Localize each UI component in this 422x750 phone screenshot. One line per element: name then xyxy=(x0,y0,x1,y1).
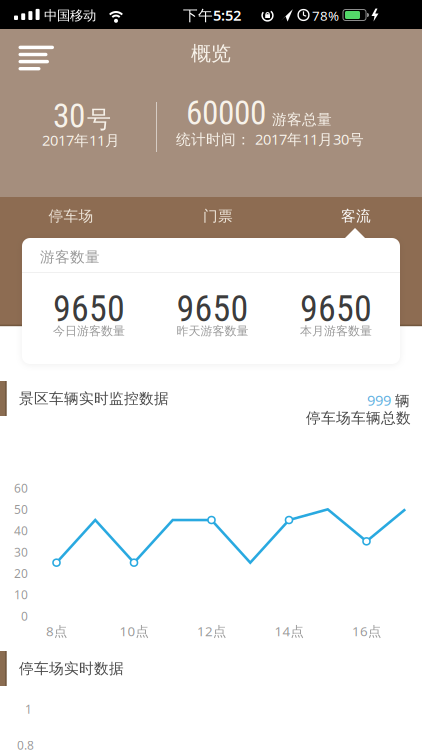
staticText: 统计时间： 2017年11月30号 xyxy=(176,129,364,149)
staticText: 本月游客数量 xyxy=(300,324,372,338)
staticText: 9650 xyxy=(53,288,125,330)
staticText: 78% xyxy=(312,7,339,24)
staticText: 9650 xyxy=(300,288,372,330)
staticText: 游客数量 xyxy=(40,248,100,266)
staticText: 999 xyxy=(367,390,391,410)
staticText: 0.8 xyxy=(17,737,34,750)
staticText: 10 xyxy=(14,587,28,603)
staticText: 1 xyxy=(25,701,32,717)
staticText: 8点 xyxy=(46,622,67,640)
staticText: 9650 xyxy=(176,288,248,330)
staticText: 10点 xyxy=(119,622,148,640)
staticText: 辆 xyxy=(395,392,410,410)
staticText: 30 xyxy=(14,544,28,560)
staticText: 中国移动 xyxy=(44,7,96,24)
staticText: 16点 xyxy=(352,622,381,640)
staticText: 60000 xyxy=(186,93,266,133)
staticText: 今日游客数量 xyxy=(53,324,125,338)
staticText: 客流 xyxy=(341,207,371,225)
staticText: 昨天游客数量 xyxy=(176,324,248,338)
staticText: 20 xyxy=(14,565,28,581)
staticText: 40 xyxy=(14,523,28,539)
staticText: 下午5:52 xyxy=(183,5,241,25)
staticText: 2017年11月 xyxy=(42,130,120,150)
staticText: 号 xyxy=(87,105,111,134)
staticText: 游客总量 xyxy=(272,110,332,128)
staticText: 停车场 xyxy=(48,207,93,225)
staticText: 景区车辆实时监控数据 xyxy=(19,389,169,407)
staticText: 概览 xyxy=(191,41,231,66)
staticText: 12点 xyxy=(197,622,226,640)
staticText: 30 xyxy=(53,96,85,136)
staticText: 停车场实时数据 xyxy=(19,659,124,677)
staticText: 停车场车辆总数 xyxy=(306,409,411,427)
staticText: 60 xyxy=(14,480,28,496)
staticText: 门票 xyxy=(203,207,233,225)
staticText: 50 xyxy=(14,501,28,517)
staticText: 0 xyxy=(21,608,28,624)
staticText: 14点 xyxy=(274,622,303,640)
